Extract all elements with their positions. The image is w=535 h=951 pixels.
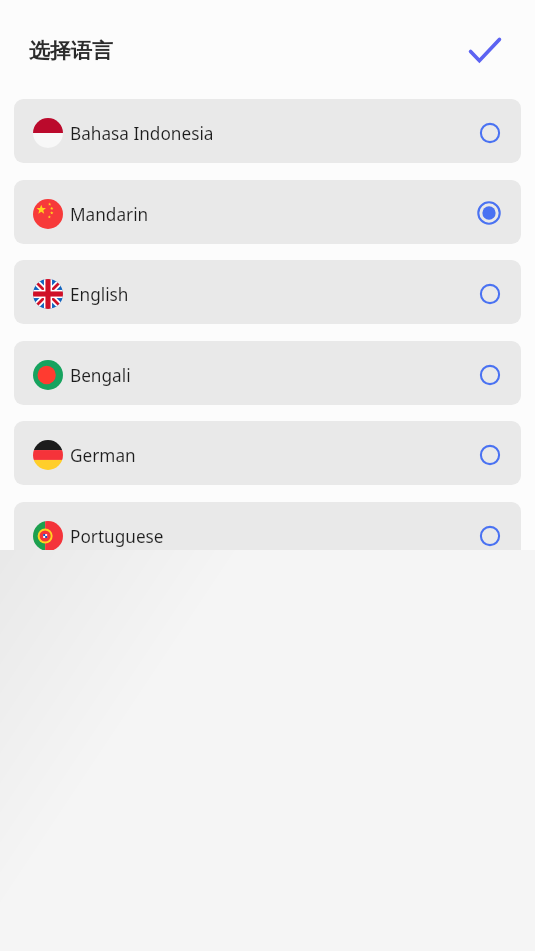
staticText: Bengali — [70, 364, 131, 387]
button[interactable]: English — [14, 260, 521, 324]
staticText: English — [70, 283, 129, 306]
button[interactable]: German — [14, 421, 521, 485]
staticText: 选择语言 — [29, 38, 113, 64]
staticText: Portuguese — [70, 525, 164, 548]
button[interactable]: Bengali — [14, 341, 521, 405]
button[interactable]: Portuguese — [14, 502, 521, 550]
button[interactable]: Confirm language selection — [461, 26, 509, 74]
staticText: Mandarin — [70, 203, 149, 226]
button[interactable]: Mandarin — [14, 180, 521, 244]
staticText: Bahasa Indonesia — [70, 122, 214, 145]
button[interactable]: Bahasa Indonesia — [14, 99, 521, 163]
staticText: German — [70, 444, 136, 467]
